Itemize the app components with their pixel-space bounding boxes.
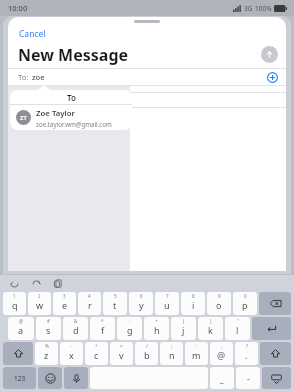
button[interactable]: = xyxy=(110,342,133,365)
staticText: + xyxy=(155,318,158,324)
staticText: ZT xyxy=(20,114,27,122)
staticText: p xyxy=(242,299,248,311)
button[interactable]: , xyxy=(210,342,233,365)
button[interactable]: ; xyxy=(160,342,183,365)
staticText: e xyxy=(62,299,68,311)
button[interactable]: Return xyxy=(252,317,291,340)
button[interactable]: Shift xyxy=(3,342,33,365)
staticText: 7 xyxy=(166,293,169,299)
button[interactable]: ( xyxy=(171,317,196,340)
button[interactable]: Cancel xyxy=(17,26,48,41)
button[interactable]: 5 xyxy=(103,292,127,315)
button[interactable]: % xyxy=(35,342,58,365)
staticText: h xyxy=(154,324,160,336)
button[interactable]: / xyxy=(135,342,158,365)
button[interactable]: Voice input xyxy=(64,367,88,389)
staticText: f xyxy=(101,324,105,336)
button[interactable]: + xyxy=(85,342,108,365)
button[interactable]: 2 xyxy=(28,292,51,315)
staticText: To: xyxy=(18,72,29,82)
staticText: ) xyxy=(210,318,212,324)
button[interactable]: _ xyxy=(210,367,234,389)
button[interactable]: + xyxy=(144,317,169,340)
staticText: 123 xyxy=(14,374,26,383)
staticText: s xyxy=(46,324,51,336)
staticText: = xyxy=(120,343,123,349)
button[interactable]: @ xyxy=(8,317,34,340)
staticText: 4 xyxy=(88,293,91,299)
staticText: ( xyxy=(183,318,185,324)
staticText: b xyxy=(144,349,150,361)
button[interactable]: ) xyxy=(198,317,223,340)
button[interactable]: " xyxy=(225,317,250,340)
staticText: m xyxy=(192,349,201,361)
staticText: 100% xyxy=(255,4,272,13)
staticText: zoe.taylor.wm@gmail.com xyxy=(36,120,112,128)
staticText: ; xyxy=(171,343,173,349)
staticText: # xyxy=(47,318,50,324)
button[interactable]: Hide keyboard xyxy=(262,367,291,389)
staticText: - xyxy=(71,343,73,349)
button[interactable]: - xyxy=(60,342,83,365)
staticText: % xyxy=(45,343,49,349)
staticText: 3 xyxy=(63,293,66,299)
staticText: t xyxy=(113,299,117,311)
button[interactable]: # xyxy=(36,317,61,340)
staticText: 10:00 xyxy=(8,3,28,13)
staticText: i xyxy=(192,299,195,311)
staticText: / xyxy=(146,343,148,349)
staticText: 8 xyxy=(192,293,195,299)
staticText: v xyxy=(119,349,124,361)
staticText: n xyxy=(169,349,175,361)
staticText: j xyxy=(182,324,185,336)
staticText: o xyxy=(216,299,222,311)
staticText: _ xyxy=(220,373,224,384)
button[interactable]: Paste xyxy=(52,277,64,289)
staticText: l xyxy=(236,324,239,336)
button[interactable]: 9 xyxy=(207,292,231,315)
button[interactable]: Emoji xyxy=(38,367,62,389)
button[interactable]: Shift xyxy=(260,342,291,365)
staticText: : xyxy=(196,343,198,349)
button[interactable]: 0 xyxy=(233,292,257,315)
button[interactable]: 4 xyxy=(78,292,101,315)
staticText: y xyxy=(139,299,144,311)
button[interactable]: : xyxy=(185,342,208,365)
staticText: g xyxy=(127,324,133,336)
button[interactable]: * xyxy=(90,317,115,340)
staticText: 1 xyxy=(13,293,16,299)
button[interactable]: Send xyxy=(261,46,278,63)
staticText: 6 xyxy=(140,293,143,299)
staticText: r xyxy=(88,299,92,311)
staticText: w xyxy=(36,299,44,311)
staticText: k xyxy=(208,324,213,336)
staticText: u xyxy=(164,299,170,311)
staticText: @ xyxy=(217,349,226,361)
staticText: - xyxy=(129,318,131,324)
button[interactable]: - xyxy=(236,367,260,389)
button[interactable]: Redo xyxy=(30,277,42,289)
button[interactable]: 7 xyxy=(155,292,179,315)
button[interactable]: 8 xyxy=(181,292,205,315)
button[interactable]: 123 xyxy=(3,367,36,389)
staticText: a xyxy=(18,324,24,336)
button[interactable]: 3 xyxy=(53,292,76,315)
button[interactable]: ZT xyxy=(10,105,132,130)
staticText: Cancel xyxy=(19,28,46,39)
button[interactable]: ? xyxy=(235,342,258,365)
staticText: d xyxy=(73,324,79,336)
button[interactable]: 1 xyxy=(3,292,26,315)
staticText: ? xyxy=(246,343,248,349)
button[interactable]: Add contact xyxy=(266,71,278,83)
button[interactable]: & xyxy=(63,317,88,340)
button[interactable]: 6 xyxy=(129,292,153,315)
staticText: . xyxy=(245,349,248,361)
staticText: New Message xyxy=(18,44,129,66)
button[interactable]: Backspace xyxy=(259,292,291,315)
button[interactable]: - xyxy=(117,317,142,340)
button[interactable]: Undo xyxy=(8,277,20,289)
staticText: * xyxy=(101,318,104,324)
staticText: 5 xyxy=(114,293,117,299)
staticText: , xyxy=(221,343,223,349)
